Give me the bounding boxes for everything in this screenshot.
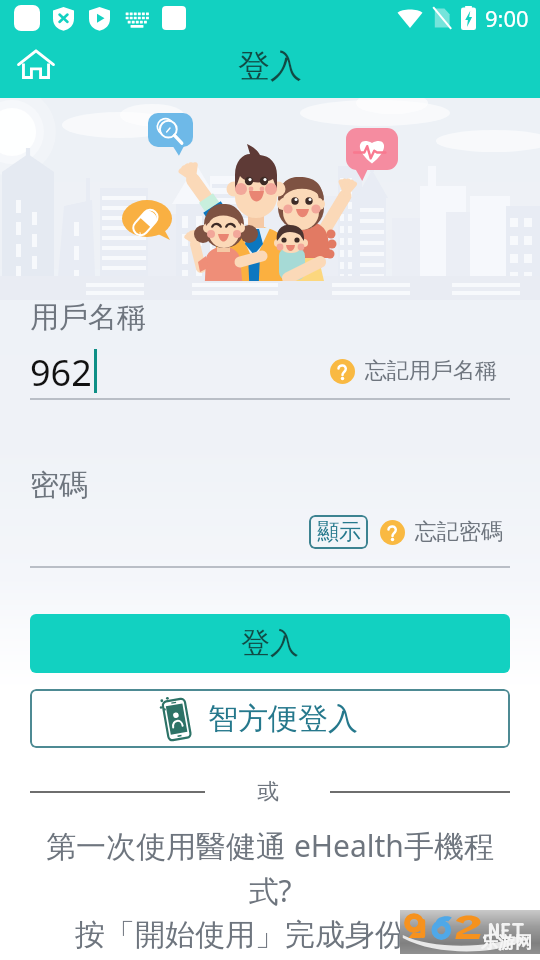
staticText: 或	[257, 778, 279, 806]
staticText: 9:00	[485, 3, 529, 33]
staticText: 962	[30, 348, 92, 394]
button[interactable]: 忘記密碼	[380, 518, 503, 546]
button[interactable]: Home	[14, 42, 58, 86]
button[interactable]: 登入	[30, 614, 510, 673]
staticText: 乐游网	[481, 932, 532, 953]
button[interactable]: 顯示	[309, 515, 368, 549]
staticText: 密碼	[30, 467, 88, 504]
staticText: 登入	[238, 46, 302, 86]
button[interactable]: 忘記用戶名稱	[330, 357, 497, 385]
staticText: 登入	[241, 625, 299, 662]
staticText: 顯示	[317, 518, 361, 546]
staticText: 忘記用戶名稱	[365, 357, 497, 385]
staticText: 忘記密碼	[415, 518, 503, 546]
staticText: 用戶名稱	[30, 299, 146, 336]
button[interactable]: 智方便登入	[30, 689, 510, 748]
staticText: 智方便登入	[208, 700, 358, 738]
staticText: 第一次使用醫健通 eHealth手機程 式? 按「開始使用」完成身份驗證	[30, 825, 510, 954]
